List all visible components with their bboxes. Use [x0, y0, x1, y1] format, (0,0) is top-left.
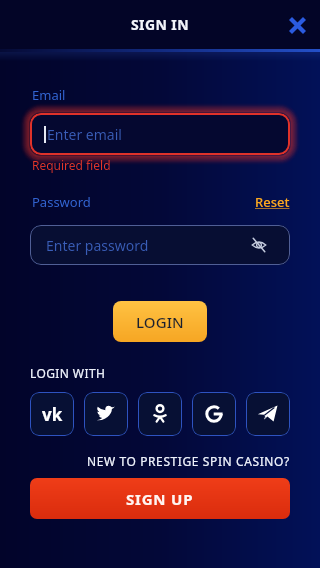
button[interactable]: SIGN UP — [30, 478, 290, 519]
button[interactable] — [283, 11, 311, 39]
staticText: LOGIN — [136, 312, 184, 332]
button[interactable] — [84, 392, 128, 436]
staticText: SIGN IN — [131, 15, 189, 34]
button[interactable] — [248, 234, 270, 256]
staticText: LOGIN WITH — [30, 365, 106, 381]
staticText: Required field — [32, 157, 111, 173]
staticText: NEW TO PRESTIGE SPIN CASINO? — [87, 453, 290, 469]
staticText: Email — [32, 86, 66, 104]
button[interactable] — [192, 392, 236, 436]
staticText: Enter email — [47, 125, 122, 144]
staticText: Enter password — [46, 236, 149, 255]
staticText: Password — [32, 193, 91, 211]
button[interactable]: LOGIN — [113, 301, 207, 342]
button[interactable] — [138, 392, 182, 436]
button[interactable]: vk — [30, 392, 74, 436]
staticText: SIGN UP — [126, 489, 194, 509]
button[interactable] — [246, 392, 290, 436]
button[interactable]: Enter password — [30, 225, 290, 265]
staticText: vk — [42, 403, 63, 426]
button[interactable]: Enter email — [30, 113, 290, 155]
button[interactable]: Reset — [255, 193, 290, 211]
